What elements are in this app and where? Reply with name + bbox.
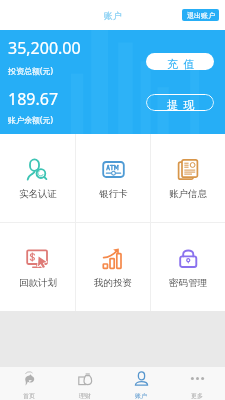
button[interactable]: 更多 [169,367,225,400]
button[interactable]: 实名认证 [0,134,75,222]
button[interactable]: 理财 [57,367,113,400]
staticText: 账户 [104,10,122,21]
staticText: 银行卡 [99,188,128,200]
staticText: 账户 [135,392,147,400]
staticText: 回款计划 [19,277,57,289]
staticText: 密码管理 [169,277,207,289]
button[interactable]: 退出账户 [182,9,219,21]
button[interactable]: 充 值 [146,53,214,70]
button[interactable]: 密码管理 [151,223,225,311]
other: 首页 [21,371,36,386]
button[interactable]: 回款计划 [0,223,75,311]
staticText: 实名认证 [19,188,57,200]
staticText: 更多 [191,392,203,400]
staticText: 189.67 [8,88,59,110]
button[interactable]: 账户信息 [151,134,225,222]
staticText: 理财 [79,392,91,400]
staticText: 退出账户 [187,11,215,20]
staticText: 充 值 [167,56,196,70]
staticText: 我的投资 [94,277,132,289]
other: 更多 [190,371,205,386]
button[interactable]: 提 现 [146,94,214,111]
staticText: 提 现 [167,97,196,111]
other: 理财 [78,371,93,386]
staticText: 首页 [23,392,35,400]
staticText: 35,200.00 [8,37,81,59]
button[interactable]: 首页 [0,367,57,400]
staticText: 账户余额(元) [8,114,53,125]
staticText: 投资总额(元) [8,65,53,76]
button[interactable]: 账户 [113,367,169,400]
staticText: 账户信息 [169,188,207,200]
other: 账户 [134,371,149,386]
button[interactable]: 我的投资 [76,223,150,311]
button[interactable]: 银行卡 [76,134,150,222]
